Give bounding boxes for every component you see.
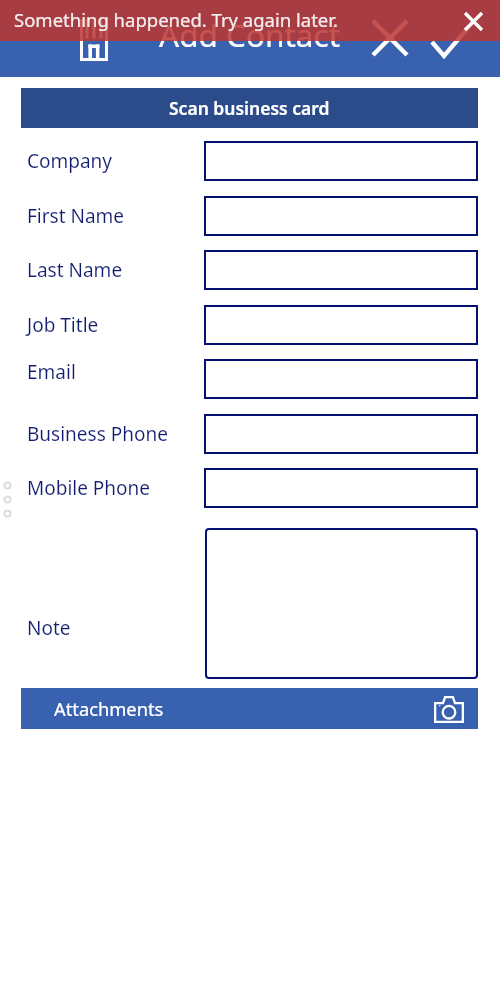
staticText: Note bbox=[27, 615, 71, 641]
button[interactable] bbox=[204, 414, 478, 454]
staticText: First Name bbox=[27, 203, 125, 229]
button[interactable]: Take photo bbox=[431, 691, 467, 727]
button[interactable] bbox=[204, 250, 478, 290]
button[interactable] bbox=[204, 196, 478, 236]
staticText: Business Phone bbox=[27, 421, 168, 447]
staticText: Last Name bbox=[27, 257, 123, 283]
staticText: Mobile Phone bbox=[27, 475, 151, 501]
button[interactable]: Dismiss bbox=[457, 5, 489, 37]
staticText: Job Title bbox=[27, 312, 99, 338]
staticText: Company bbox=[27, 148, 113, 174]
button[interactable]: Scan business card bbox=[21, 88, 478, 128]
staticText: Something happened. Try again later. bbox=[14, 7, 338, 32]
button[interactable] bbox=[204, 359, 478, 399]
button[interactable] bbox=[205, 528, 478, 679]
staticText: Email bbox=[27, 359, 76, 385]
button[interactable] bbox=[204, 468, 478, 508]
button[interactable] bbox=[204, 305, 478, 345]
staticText: Attachments bbox=[54, 696, 164, 721]
button[interactable] bbox=[204, 141, 478, 181]
button[interactable]: Cancel bbox=[366, 14, 414, 62]
staticText: Scan business card bbox=[169, 96, 330, 120]
button[interactable]: Save bbox=[428, 14, 476, 62]
staticText: Add Contact bbox=[159, 13, 341, 56]
button[interactable]: Company bbox=[70, 16, 118, 64]
button[interactable]: Attachments bbox=[21, 688, 478, 729]
